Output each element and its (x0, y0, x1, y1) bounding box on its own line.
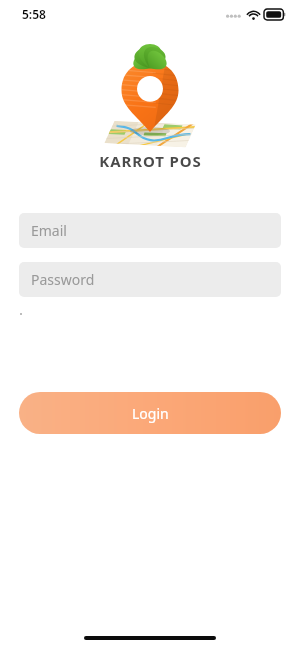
staticText: Password (31, 270, 95, 289)
button[interactable]: Email (19, 213, 281, 248)
staticText: Login (132, 404, 169, 423)
button[interactable]: Login (19, 392, 281, 434)
staticText: Email (31, 221, 67, 240)
staticText: 5:58 (22, 6, 46, 22)
button[interactable]: Password (19, 262, 281, 297)
staticText: KARROT POS (99, 151, 202, 171)
